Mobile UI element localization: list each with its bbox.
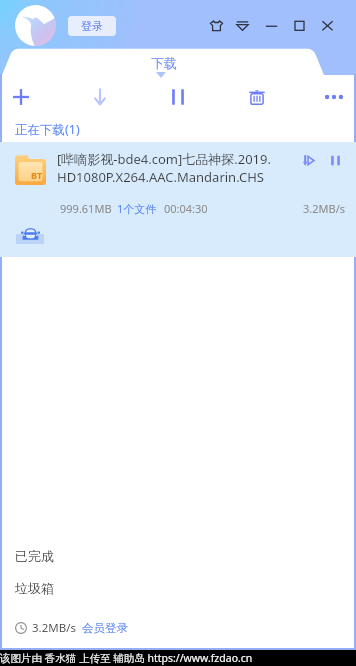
- staticText: [哔嘀影视-bde4.com]七品神探.2019.: [57, 150, 271, 168]
- button[interactable]: Skin: [208, 16, 225, 35]
- button[interactable]: Play: [298, 150, 319, 171]
- staticText: 999.61MB: [60, 201, 112, 216]
- button[interactable]: Close: [319, 16, 336, 35]
- button[interactable]: BT: [0, 142, 356, 257]
- button[interactable]: Pause: [325, 150, 346, 171]
- button[interactable]: Start all: [83, 82, 117, 112]
- button[interactable]: New download: [4, 82, 38, 112]
- staticText: 会员登录: [82, 621, 128, 635]
- staticText: 1个文件: [117, 201, 157, 216]
- staticText: HD1080P.X264.AAC.Mandarin.CHS: [57, 168, 264, 186]
- staticText: 下载: [151, 55, 177, 71]
- staticText: 3.2MB/s: [303, 201, 346, 216]
- staticText: BT: [31, 169, 43, 181]
- button[interactable]: Delete: [240, 82, 274, 112]
- button[interactable]: More: [317, 82, 351, 112]
- button[interactable]: Pause all: [161, 82, 195, 112]
- staticText: 该图片由 香水猫 上传至 辅助岛 https://www.fzdao.cn: [0, 651, 253, 665]
- button[interactable]: 登录: [68, 16, 116, 36]
- button[interactable]: Minimize: [263, 16, 280, 35]
- staticText: 垃圾箱: [15, 580, 54, 596]
- staticText: 登录: [81, 19, 103, 33]
- staticText: 00:04:30: [164, 201, 208, 216]
- button[interactable]: Collapse: [234, 16, 251, 35]
- button[interactable]: Maximize: [291, 16, 308, 35]
- staticText: 3.2MB/s: [32, 620, 76, 636]
- staticText: 已完成: [15, 548, 54, 564]
- staticText: 正在下载(1): [15, 121, 80, 138]
